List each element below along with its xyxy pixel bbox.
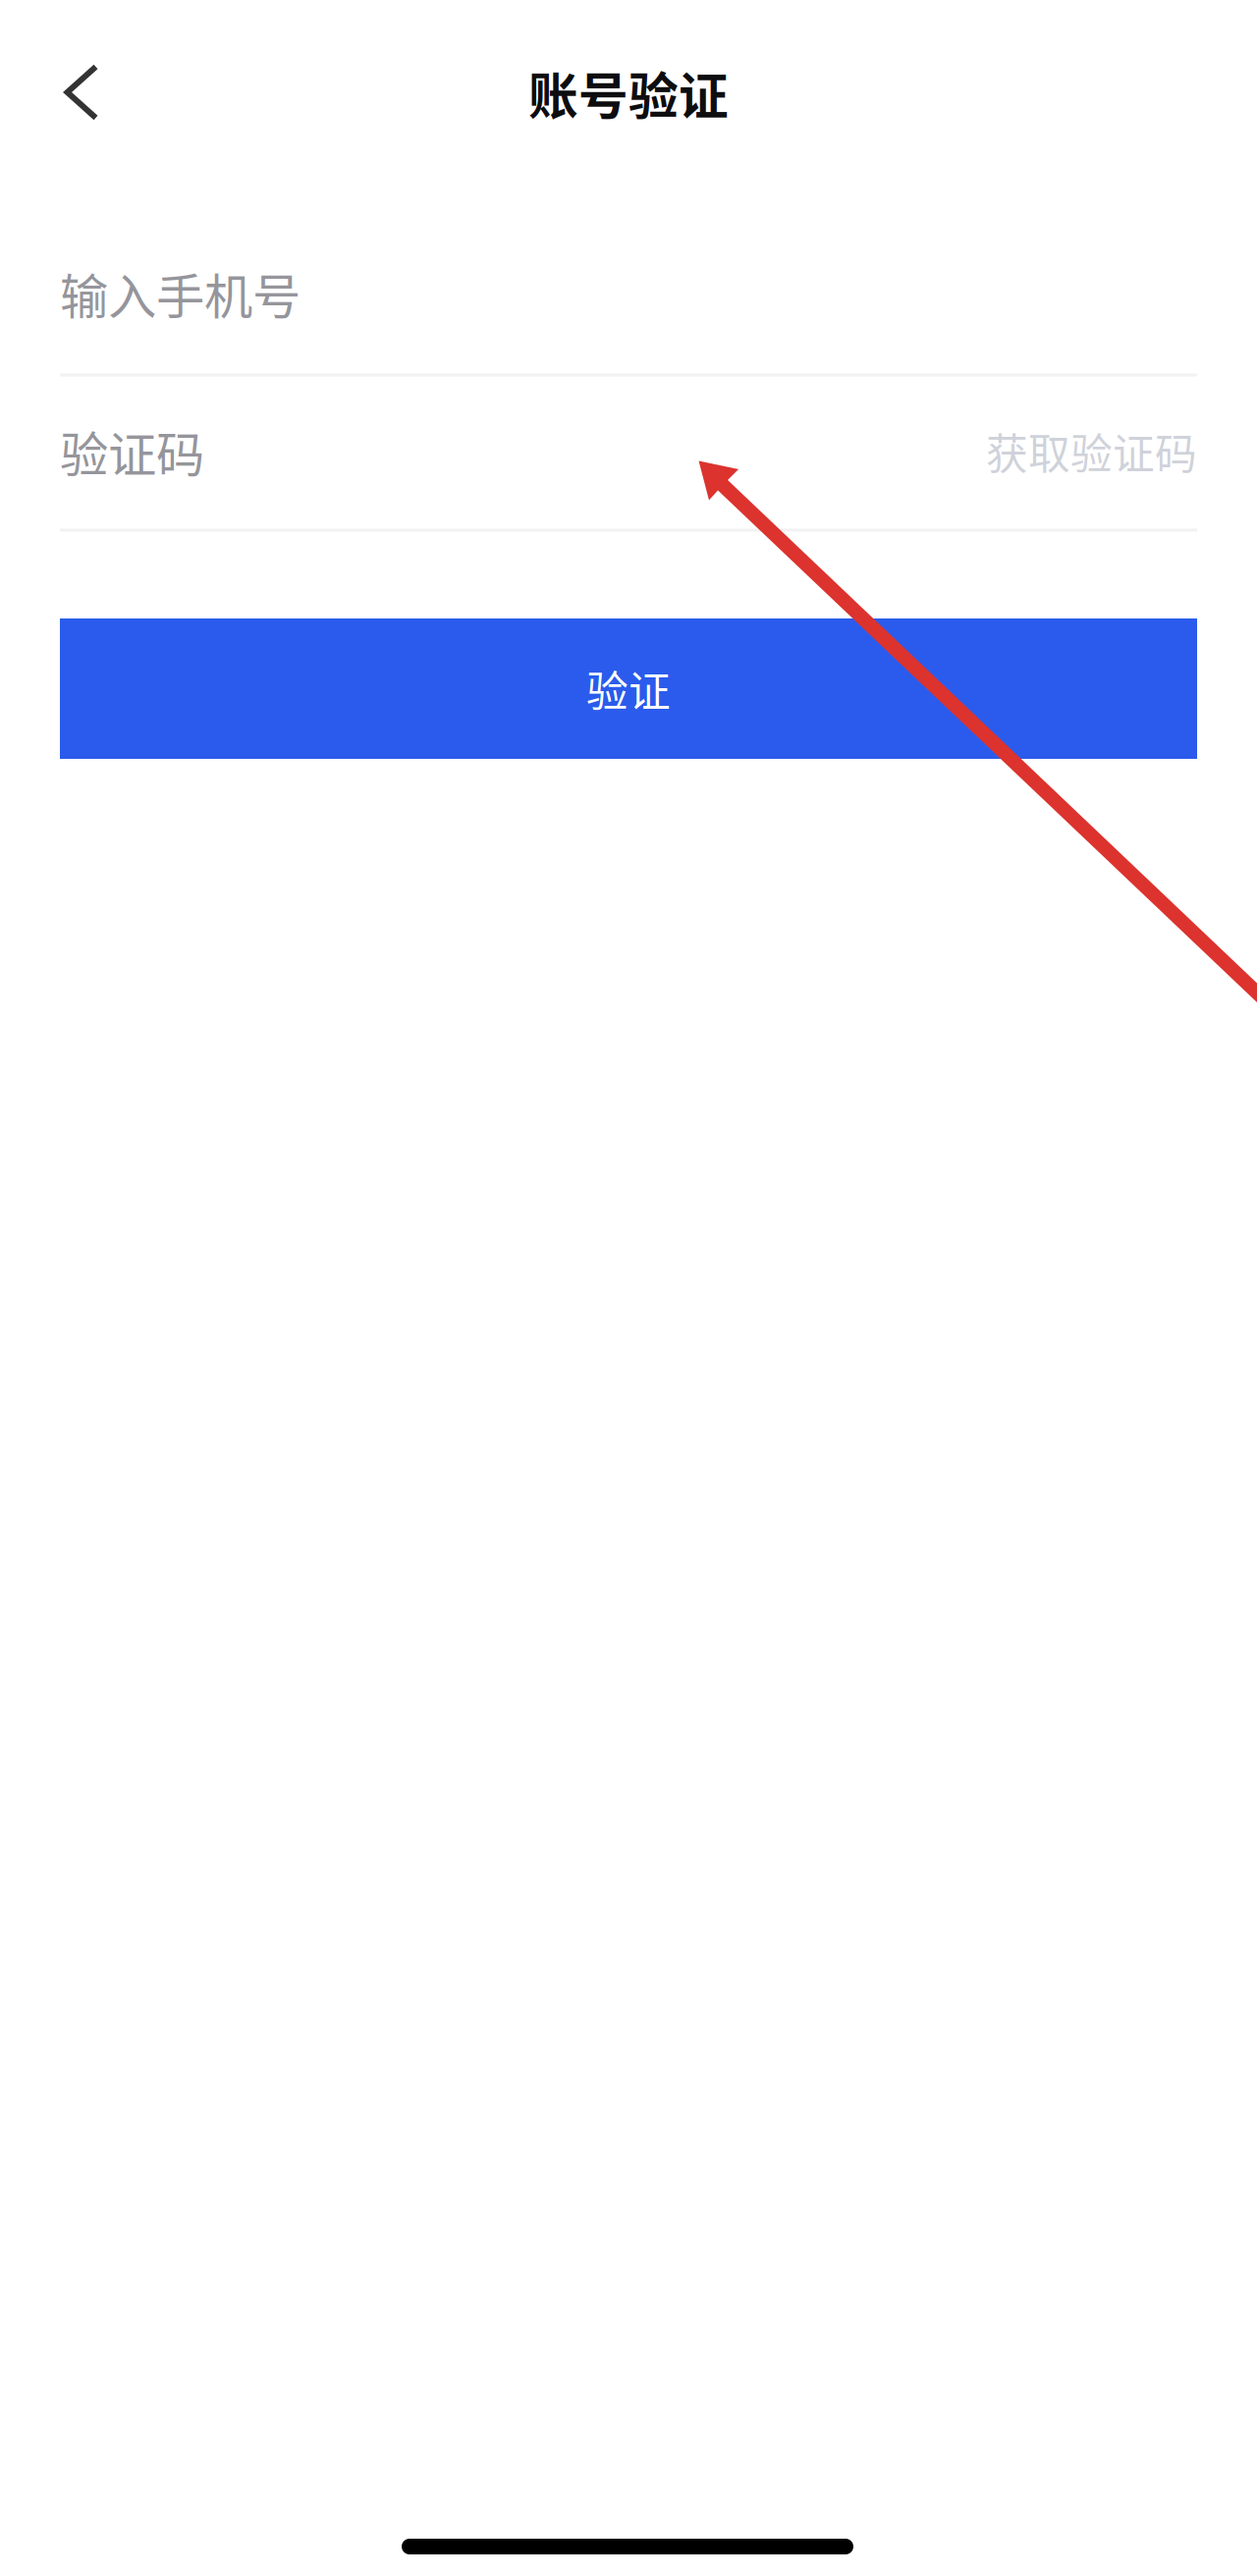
staticText: 验证 <box>586 658 671 719</box>
button[interactable]: 输入手机号 <box>60 258 1197 328</box>
staticText: 输入手机号 <box>60 258 301 328</box>
staticText: 验证码 <box>60 416 204 486</box>
button[interactable]: 验证码 <box>60 416 747 486</box>
staticText: 获取验证码 <box>986 421 1197 481</box>
staticText: 账号验证 <box>528 57 729 129</box>
button[interactable]: 验证 <box>60 618 1197 759</box>
button[interactable]: Back <box>27 37 137 147</box>
button[interactable]: 获取验证码 <box>986 416 1197 486</box>
